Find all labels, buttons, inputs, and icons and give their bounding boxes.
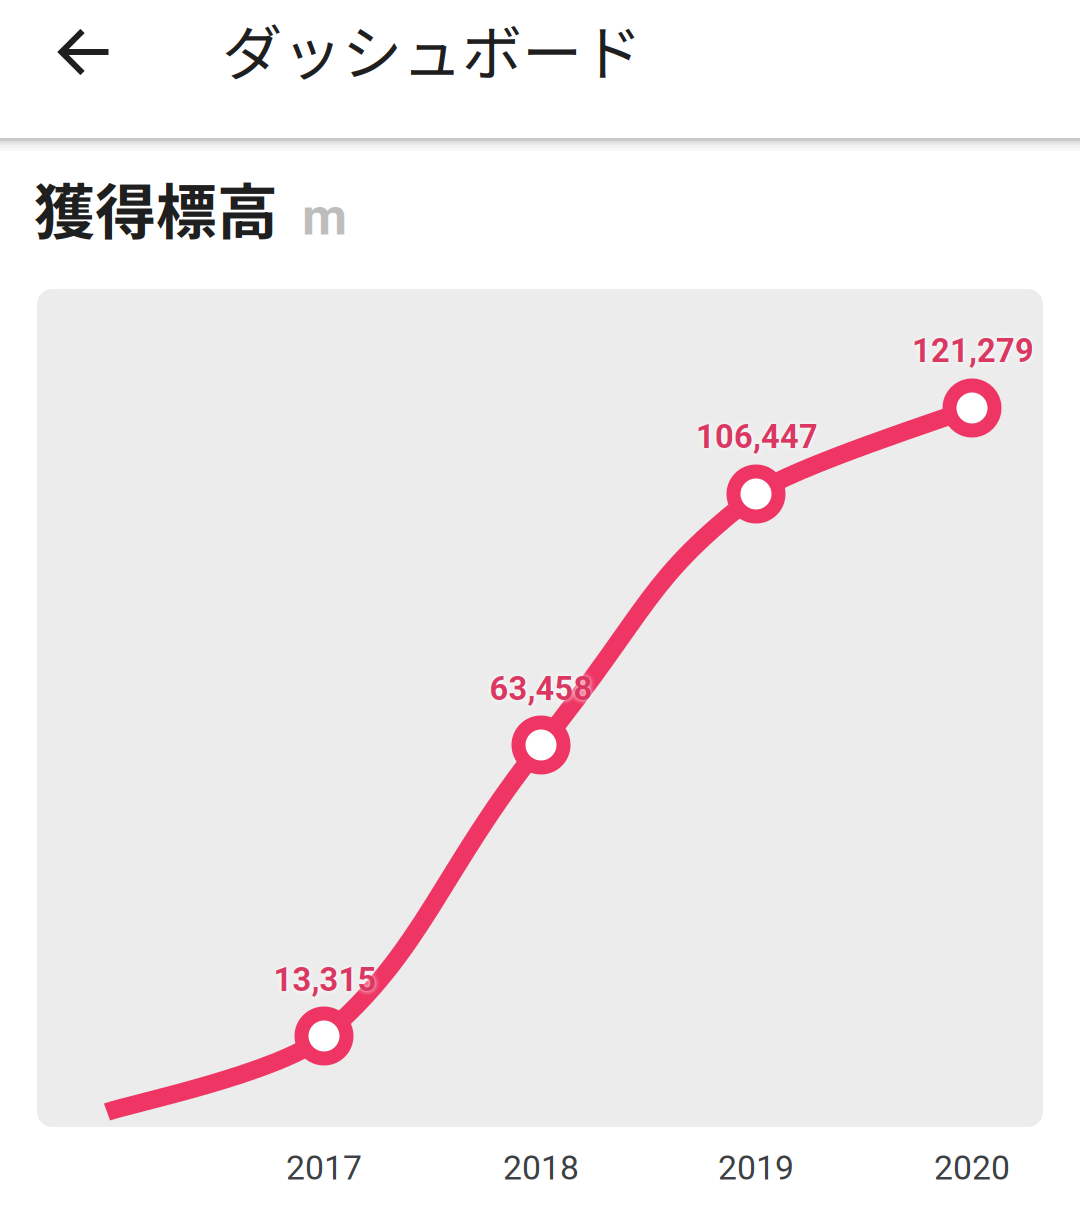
staticText: 106,447 — [696, 418, 818, 456]
staticText: 13,315 — [273, 961, 376, 999]
staticText: m — [302, 186, 347, 247]
button[interactable]: Back — [26, 0, 144, 107]
staticText: 2018 — [503, 1148, 579, 1188]
staticText: ダッシュボード — [222, 5, 642, 93]
staticText: 2020 — [934, 1148, 1010, 1188]
staticText: 2019 — [718, 1148, 794, 1188]
staticText: 2017 — [286, 1148, 362, 1188]
staticText: 63,458 — [489, 670, 592, 708]
staticText: 121,279 — [912, 332, 1034, 370]
staticText: 獲得標高 — [34, 164, 278, 252]
